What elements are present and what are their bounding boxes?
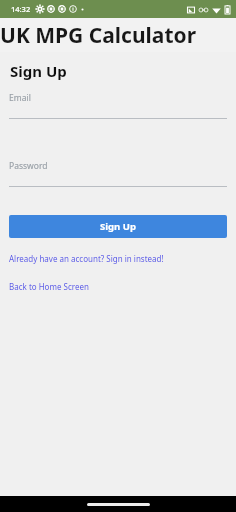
staticText: UK MPG Calculator — [0, 21, 197, 50]
staticText: Back to Home Screen — [9, 281, 89, 292]
staticText: Password — [9, 160, 48, 172]
staticText: Already have an account? Sign in instead… — [9, 253, 164, 264]
button[interactable]: Back to Home Screen — [0, 280, 236, 293]
staticText: Email — [9, 92, 31, 104]
staticText: 14:32 — [11, 4, 31, 14]
staticText: Sign Up — [10, 61, 67, 81]
other: Home — [87, 503, 150, 506]
staticText: Sign Up — [100, 220, 136, 233]
button[interactable]: Already have an account? Sign in instead… — [0, 252, 236, 265]
button[interactable]: Sign Up — [9, 215, 227, 238]
